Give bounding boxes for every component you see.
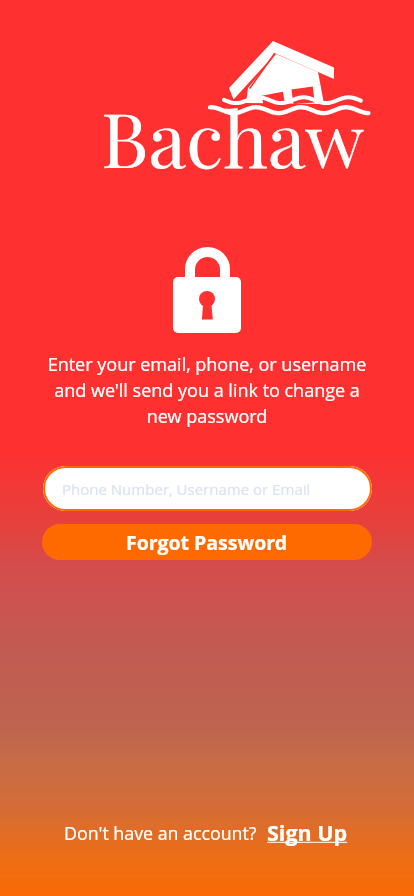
staticText: Forgot Password [126, 529, 288, 556]
staticText: Don't have an account? [64, 821, 257, 845]
button[interactable]: Phone Number, Username or Email [43, 466, 372, 511]
button[interactable]: Forgot Password [42, 524, 372, 560]
button[interactable]: Sign Up [267, 818, 348, 847]
staticText: Phone Number, Username or Email [62, 479, 311, 499]
staticText: Sign Up [267, 818, 348, 847]
staticText: Bachaw [101, 86, 364, 187]
staticText: Enter your email, phone, or username and… [42, 352, 372, 429]
